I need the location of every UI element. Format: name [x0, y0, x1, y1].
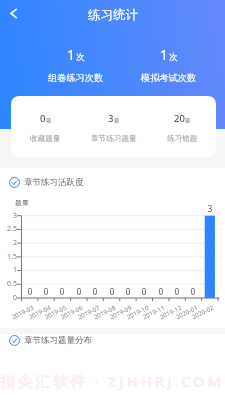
staticText: 2019-09	[98, 303, 132, 325]
staticText: 0	[69, 286, 89, 298]
staticText: 0	[52, 286, 72, 298]
button[interactable]: 1	[36, 45, 116, 84]
button[interactable]: 章节练习活跃度	[9, 173, 84, 191]
staticText: 0	[183, 286, 203, 298]
staticText: 章节练习题量	[91, 134, 137, 144]
staticText: 2019-10	[115, 303, 149, 325]
staticText: 0	[36, 286, 56, 298]
button[interactable]: 章节练习题量分布	[9, 331, 92, 349]
staticText: 2019-04	[17, 303, 51, 325]
staticText: 章节练习活跃度	[24, 177, 84, 188]
staticText: 组卷练习次数	[48, 72, 104, 84]
staticText: 2020-02	[180, 303, 214, 325]
staticText: 题	[114, 117, 120, 124]
staticText: 练习错题	[167, 134, 198, 144]
staticText: 2019-07	[66, 303, 100, 325]
staticText: 3	[108, 112, 114, 125]
staticText: 练习统计	[88, 7, 138, 23]
staticText: 2019-12	[148, 303, 182, 325]
staticText: 2019-03	[0, 303, 34, 325]
staticText: 0	[118, 286, 138, 298]
staticText: 3	[200, 203, 220, 215]
staticText: 模拟考试次数	[141, 72, 197, 84]
staticText: 次	[76, 52, 85, 63]
staticText: 1	[160, 45, 169, 64]
staticText: 0	[151, 286, 171, 298]
staticText: 0.5	[0, 279, 17, 289]
staticText: 0	[20, 286, 40, 298]
staticText: 2020-01	[164, 303, 198, 325]
button[interactable]: 20	[148, 96, 216, 157]
staticText: 题	[185, 117, 191, 124]
staticText: 2019-05	[33, 303, 67, 325]
staticText: 1.5	[0, 252, 17, 262]
staticText: 收藏题量	[30, 134, 61, 144]
staticText: 2019-08	[82, 303, 116, 325]
staticText: 2019-06	[49, 303, 83, 325]
staticText: 1	[67, 45, 76, 64]
staticText: 指尖汇软件 · ZJHHRJ.COM	[0, 371, 225, 391]
staticText: 0	[40, 112, 46, 125]
staticText: 题量	[15, 198, 29, 207]
button[interactable]: 0	[11, 96, 80, 157]
staticText: 0	[102, 286, 122, 298]
staticText: 2	[0, 238, 17, 248]
staticText: 次	[169, 52, 178, 63]
staticText: 2.5	[0, 224, 17, 234]
staticText: 3	[0, 211, 17, 221]
staticText: 章节练习题量分布	[24, 335, 92, 346]
button[interactable]: Back	[2, 4, 25, 23]
staticText: 0	[167, 286, 187, 298]
staticText: 题	[46, 117, 52, 124]
staticText: 0	[85, 286, 105, 298]
button[interactable]: 3	[80, 96, 148, 157]
staticText: 20	[174, 112, 185, 125]
staticText: 0	[134, 286, 154, 298]
staticText: 1	[0, 265, 17, 275]
staticText: 0	[0, 293, 17, 303]
staticText: 2019-11	[131, 303, 165, 325]
button[interactable]: 1	[129, 45, 209, 84]
